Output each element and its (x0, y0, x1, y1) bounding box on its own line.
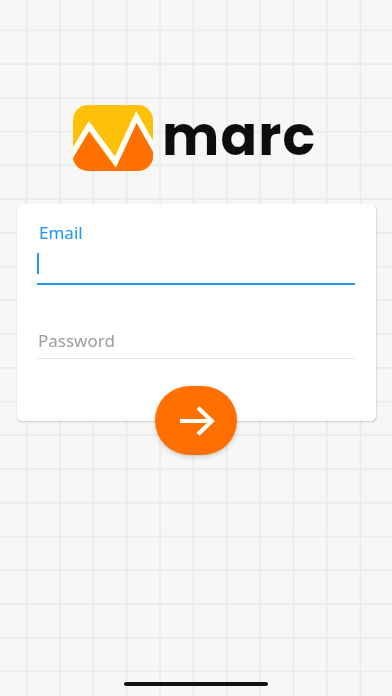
staticText: marc (162, 98, 317, 174)
button[interactable]: Sign in (155, 386, 237, 455)
staticText: Password (38, 329, 115, 352)
staticText: Email (39, 221, 83, 244)
